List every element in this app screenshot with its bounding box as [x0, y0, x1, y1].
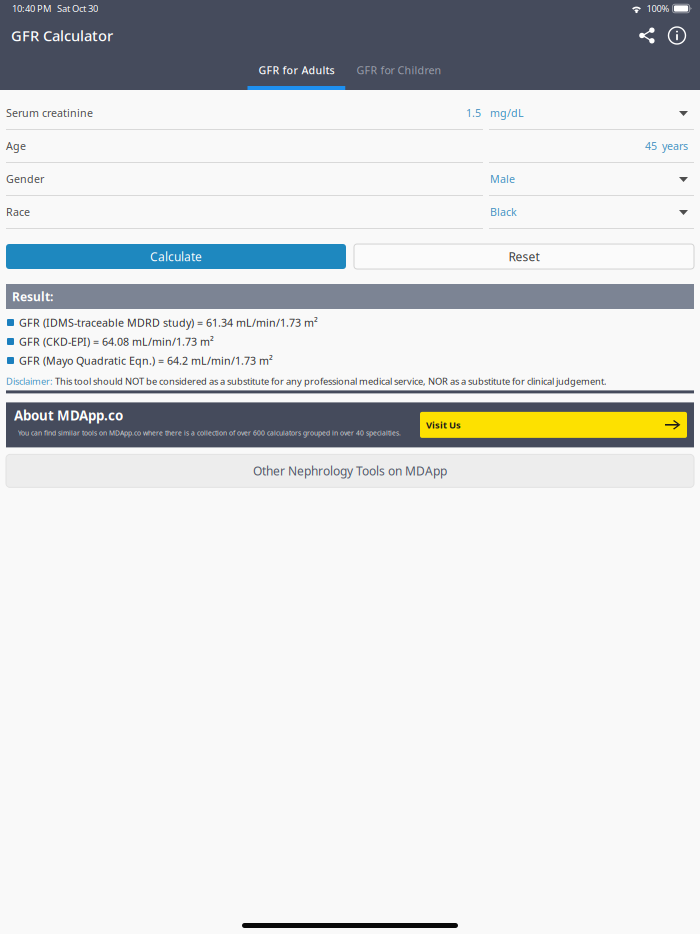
staticText: years	[662, 139, 688, 153]
staticText: Disclaimer:	[6, 375, 53, 387]
staticText: You can find similar tools on MDApp.co w…	[18, 428, 401, 437]
button[interactable]: Other Nephrology Tools on MDApp	[6, 454, 694, 487]
staticText: Result:	[12, 288, 53, 304]
button[interactable]: Info	[662, 20, 692, 50]
staticText: 45	[645, 139, 657, 153]
button[interactable]: Serum creatinine	[6, 90, 694, 130]
staticText: Age	[6, 139, 26, 153]
staticText: About MDApp.co	[14, 406, 123, 424]
button[interactable]: Reset	[354, 244, 694, 269]
button[interactable]: GFR for Adults	[247, 54, 345, 90]
staticText: Serum creatinine	[6, 106, 93, 120]
staticText: 10:40 PM	[12, 2, 51, 15]
staticText: Race	[6, 205, 30, 219]
staticText: Reset	[508, 248, 539, 264]
staticText: GFR Calculator	[11, 26, 113, 45]
staticText: 1.5	[466, 106, 481, 120]
staticText: Male	[490, 172, 515, 186]
button[interactable]: Age	[6, 130, 694, 163]
button[interactable]: Visit Us	[420, 412, 687, 438]
button[interactable]: Share	[632, 20, 662, 50]
staticText: GFR for Adults	[258, 63, 334, 77]
staticText: Black	[490, 205, 517, 219]
staticText: Other Nephrology Tools on MDApp	[253, 463, 447, 479]
staticText: GFR for Children	[356, 63, 441, 77]
staticText: Gender	[6, 172, 44, 186]
staticText: GFR (Mayo Quadratic Eqn.) = 64.2 mL/min/…	[19, 353, 273, 368]
staticText: Visit Us	[426, 419, 461, 431]
staticText: This tool should NOT be considered as a …	[53, 375, 607, 387]
button[interactable]: Race	[6, 196, 694, 229]
staticText: GFR (CKD-EPI) = 64.08 mL/min/1.73 m²	[19, 334, 214, 349]
button[interactable]: Calculate	[6, 244, 346, 269]
staticText: mg/dL	[490, 106, 524, 120]
staticText: GFR (IDMS-traceable MDRD study) = 61.34 …	[19, 315, 318, 330]
staticText: Calculate	[150, 248, 202, 264]
staticText: 100%	[646, 2, 669, 15]
button[interactable]: Gender	[6, 163, 694, 196]
button[interactable]: GFR for Children	[345, 54, 452, 90]
staticText: Sat Oct 30	[57, 2, 98, 15]
